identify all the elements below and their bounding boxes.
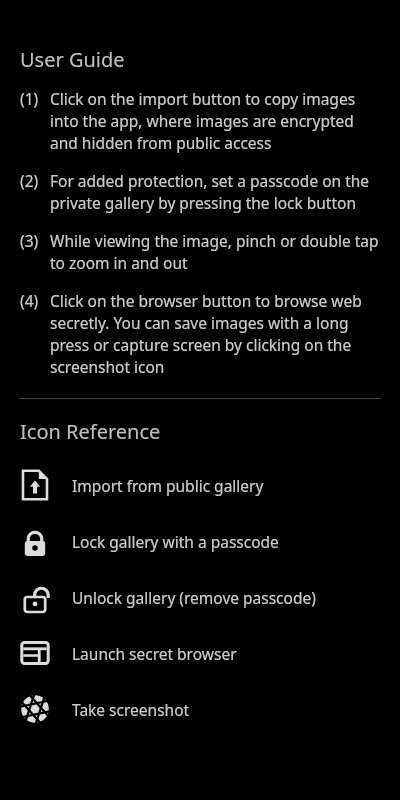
- staticText: While viewing the image, pinch or double…: [50, 230, 382, 274]
- staticText: (2): [20, 170, 50, 192]
- button[interactable]: (2): [0, 170, 400, 214]
- staticText: Launch secret browser: [72, 643, 237, 664]
- staticText: For added protection, set a passcode on …: [50, 170, 382, 214]
- staticText: (4): [20, 290, 50, 312]
- other: Import from public gallery: [20, 470, 50, 500]
- button[interactable]: (4): [0, 290, 400, 378]
- button[interactable]: Lock gallery: [0, 513, 400, 569]
- staticText: Take screenshot: [72, 699, 190, 720]
- other: Lock gallery: [20, 526, 50, 556]
- other: Take screenshot: [20, 694, 50, 724]
- button[interactable]: Import from public gallery: [0, 457, 400, 513]
- staticText: Icon Reference: [20, 418, 161, 445]
- staticText: Click on the import button to copy image…: [50, 88, 382, 154]
- button[interactable]: (1): [0, 88, 400, 154]
- staticText: Import from public gallery: [72, 475, 264, 496]
- button[interactable]: Unlock gallery: [0, 569, 400, 625]
- other: Unlock gallery: [20, 582, 50, 612]
- staticText: Lock gallery with a passcode: [72, 531, 279, 552]
- staticText: User Guide: [20, 46, 125, 73]
- button[interactable]: (3): [0, 230, 400, 274]
- button[interactable]: Launch secret browser: [0, 625, 400, 681]
- other: Launch secret browser: [20, 638, 50, 668]
- button[interactable]: Take screenshot: [0, 681, 400, 737]
- staticText: (3): [20, 230, 50, 252]
- staticText: Click on the browser button to browse we…: [50, 290, 382, 378]
- staticText: Unlock gallery (remove passcode): [72, 587, 316, 608]
- staticText: (1): [20, 88, 50, 110]
